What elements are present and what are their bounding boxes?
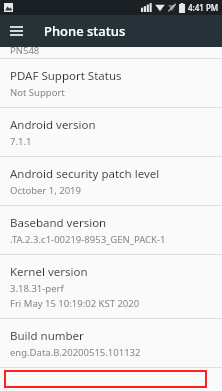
staticText: Phone status [44,22,126,40]
staticText: 4:41 PM [188,2,219,13]
staticText: October 1, 2019 [10,184,81,197]
staticText: 7.1.1 [10,135,32,148]
staticText: PDAF Support Status [10,68,122,84]
button[interactable]: PDAF Support Status [0,59,222,107]
staticText: Fri May 15 10:19:02 KST 2020 [10,297,140,310]
button[interactable]: Software version [4,370,207,388]
button[interactable]: Open navigation menu [0,15,32,47]
staticText: .TA.2.3.c1-00219-8953_GEN_PACK-1 [10,233,166,246]
button[interactable]: Build number [0,319,222,367]
staticText: 3.18.31-perf [10,282,64,295]
staticText: Baseband version [10,215,107,231]
staticText: Android security patch level [10,166,160,182]
staticText: Kernel version [10,264,88,280]
button[interactable]: Baseband version [0,206,222,254]
button[interactable]: Android version [0,108,222,156]
button[interactable]: PN548 [0,47,222,58]
button[interactable]: Kernel version [0,255,222,318]
staticText: eng.Data.B.20200515.101132 [10,346,141,359]
button[interactable]: Android security patch level [0,157,222,205]
staticText: Android version [10,117,96,133]
staticText: PN548 [10,44,40,55]
staticText: Build number [10,328,84,344]
staticText: Not Support [10,86,65,99]
